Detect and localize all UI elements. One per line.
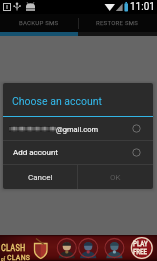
staticText: Choose an account [12, 95, 103, 107]
staticText: Cancel [28, 173, 53, 182]
staticText: BACKUP SMS [19, 19, 59, 26]
button[interactable]: Clash of Clans advertisement, Play Free [0, 235, 157, 261]
button[interactable]: @gmail.com [3, 117, 153, 140]
button[interactable]: RESTORE SMS [78, 14, 157, 30]
button[interactable]: Add account [3, 141, 153, 164]
staticText: PLAY [133, 240, 148, 248]
staticText: CLANS [7, 253, 31, 261]
staticText: Add account [13, 148, 132, 157]
staticText: CLASH [1, 243, 26, 253]
staticText: 11:01 [130, 1, 155, 13]
staticText: RESTORE SMS [96, 19, 139, 26]
button[interactable]: OK [78, 165, 153, 189]
staticText: FREE [133, 248, 148, 256]
staticText: @gmail.com [56, 125, 99, 134]
button[interactable]: BACKUP SMS [0, 14, 78, 30]
button[interactable]: Cancel [3, 165, 77, 189]
staticText: OK [110, 173, 121, 182]
staticText: of [1, 256, 6, 261]
